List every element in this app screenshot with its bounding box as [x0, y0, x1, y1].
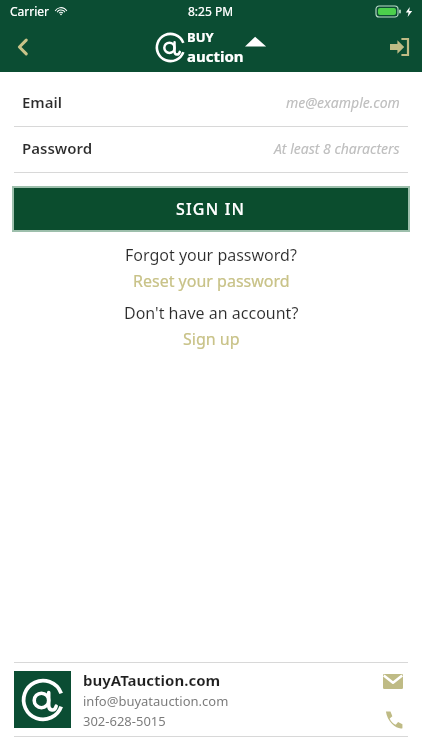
button[interactable]: Password [0, 132, 422, 178]
staticText: SIGN IN [176, 198, 246, 220]
staticText: Carrier [10, 3, 50, 19]
staticText: me@example.com [286, 93, 400, 112]
button[interactable]: buyATauction logo [14, 671, 71, 728]
staticText: Reset your password [133, 270, 290, 292]
button[interactable]: Email [0, 86, 422, 132]
staticText: Email [22, 92, 63, 112]
button[interactable]: Reset your password [125, 269, 298, 293]
staticText: Sign up [183, 328, 240, 350]
staticText: auction [187, 46, 244, 66]
staticText: 302-628-5015 [83, 712, 166, 730]
staticText: At least 8 characters [274, 139, 400, 158]
button[interactable]: Email us [378, 666, 408, 696]
staticText: Forgot your password? [125, 244, 297, 266]
button[interactable]: Sign up [175, 327, 248, 351]
button[interactable]: SIGN IN [14, 188, 408, 230]
staticText: Password [22, 138, 93, 158]
staticText: Don't have an account? [124, 302, 299, 324]
staticText: info@buyatauction.com [83, 692, 229, 710]
staticText: BUY [187, 28, 214, 46]
button[interactable]: Sign in [376, 24, 422, 70]
button[interactable]: Back [0, 24, 46, 70]
staticText: buyATauction.com [83, 670, 221, 690]
staticText: 8:25 PM [188, 3, 234, 19]
button[interactable]: Call us [378, 704, 408, 734]
